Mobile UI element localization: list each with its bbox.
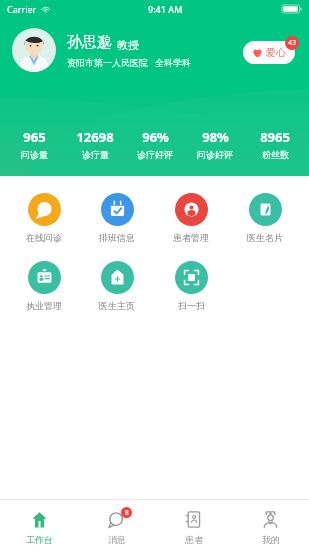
staticText: 患者管理 — [173, 232, 209, 243]
staticText: 扫一扫 — [178, 300, 205, 311]
staticText: 医生名片 — [247, 232, 283, 243]
button[interactable]: 患者管理 — [169, 190, 213, 246]
staticText: 排班信息 — [99, 232, 135, 243]
staticText: 孙思邈 — [67, 33, 112, 52]
staticText: 我的 — [262, 534, 280, 545]
button[interactable]: 在线问诊 — [22, 190, 66, 246]
button[interactable]: 工作台 — [0, 500, 78, 550]
staticText: 8965 — [260, 128, 290, 146]
staticText: 965 — [23, 128, 46, 146]
staticText: 患者 — [185, 534, 203, 545]
staticText: 43 — [288, 38, 297, 48]
button[interactable]: 医生主页 — [95, 258, 139, 314]
button[interactable]: 爱心 — [243, 41, 295, 64]
button[interactable]: 患者 — [155, 500, 232, 550]
button[interactable]: 8 — [78, 500, 155, 550]
staticText: 教授 — [117, 38, 139, 52]
staticText: 在线问诊 — [26, 232, 62, 243]
button[interactable]: 排班信息 — [95, 190, 139, 246]
staticText: 9:41 AM — [148, 3, 183, 15]
staticText: 诊疗量 — [82, 149, 109, 160]
staticText: 8 — [125, 508, 129, 517]
button[interactable]: 扫一扫 — [171, 258, 212, 314]
staticText: 消息 — [108, 534, 126, 545]
button[interactable]: 我的 — [232, 500, 309, 550]
staticText: 爱心 — [266, 46, 286, 59]
staticText: 问诊好评 — [197, 149, 233, 160]
button[interactable]: 执业管理 — [22, 258, 66, 314]
staticText: 诊疗好评 — [137, 149, 173, 160]
staticText: 问诊量 — [21, 149, 48, 160]
staticText: Carrier — [7, 3, 37, 15]
staticText: 工作台 — [26, 534, 53, 545]
staticText: 医生主页 — [99, 300, 135, 311]
staticText: 98% — [202, 128, 229, 146]
button[interactable]: 医生名片 — [243, 190, 287, 246]
staticText: 资阳市第一人民医院 全科学科 — [67, 56, 192, 68]
staticText: 96% — [142, 128, 169, 146]
staticText: 执业管理 — [26, 300, 62, 311]
staticText: 粉丝数 — [262, 149, 289, 160]
staticText: 12698 — [76, 128, 114, 146]
